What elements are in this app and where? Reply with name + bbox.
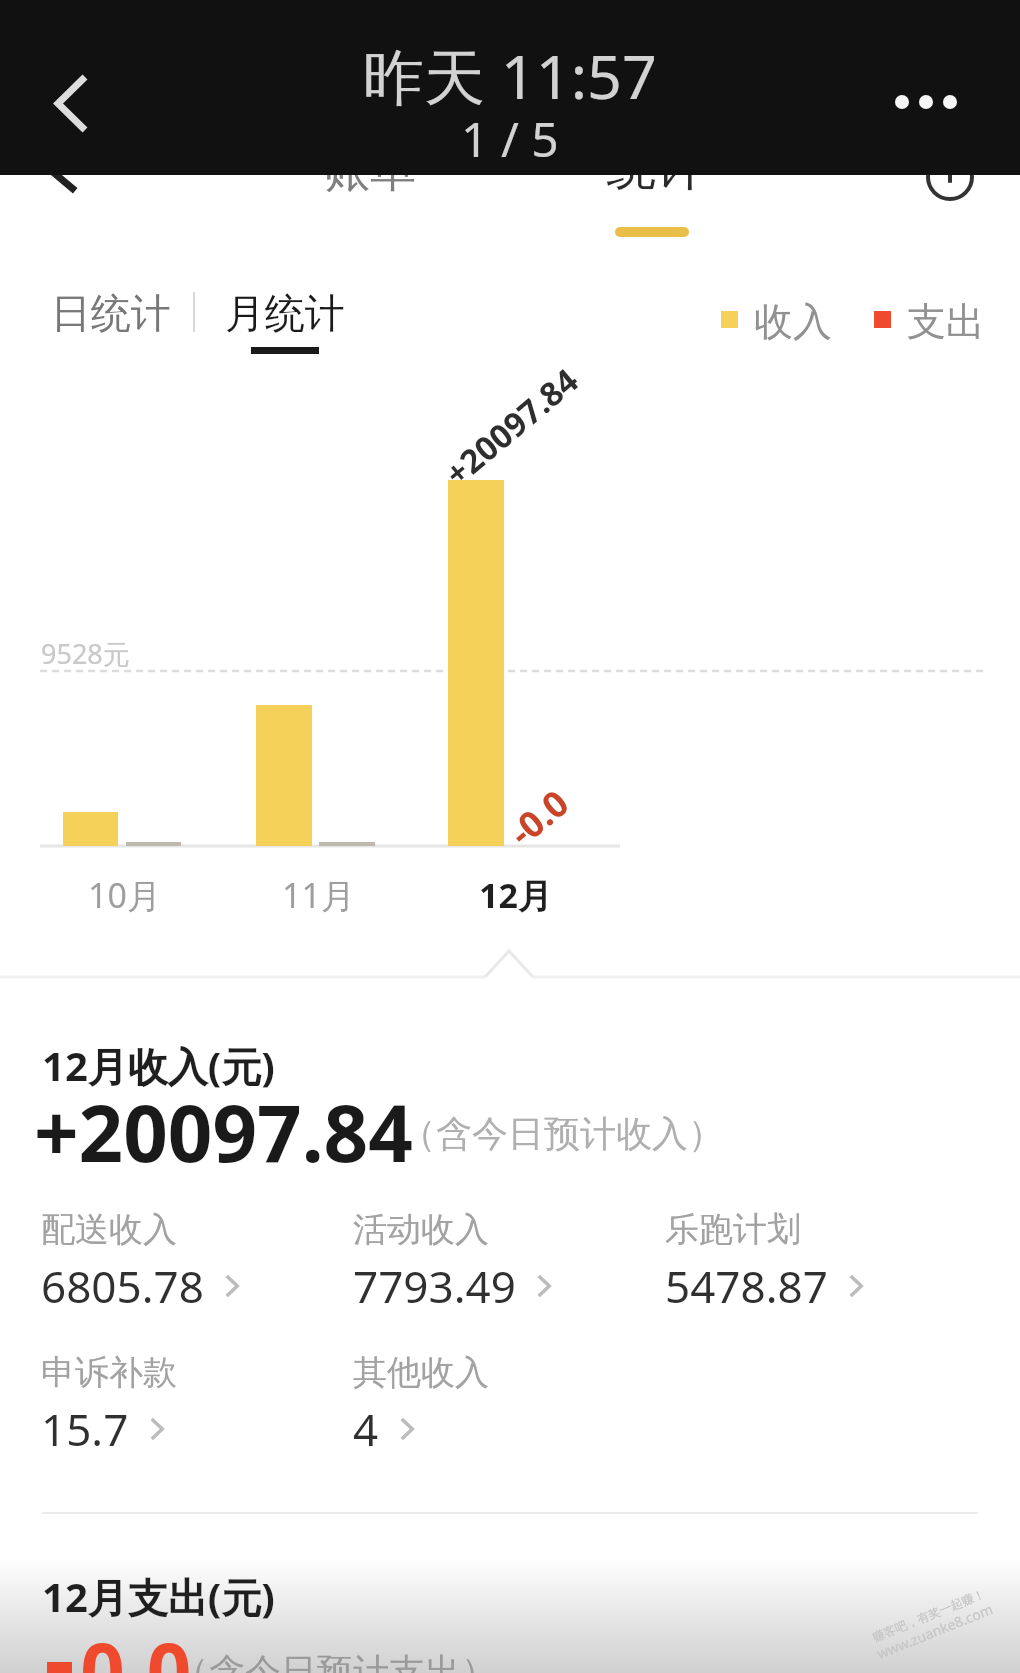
staticText: +20097.84	[34, 1079, 413, 1185]
button[interactable]: Back	[20, 130, 108, 218]
button[interactable]: Back	[31, 63, 111, 143]
staticText: 12月收入(元)	[42, 1038, 275, 1093]
staticText: 统计	[606, 136, 706, 199]
staticText: 5478.87	[665, 1256, 828, 1316]
staticText: 11月	[282, 872, 355, 918]
staticText: 10月	[88, 872, 161, 918]
staticText: +20097.84	[435, 357, 588, 495]
button[interactable]: 活动收入	[353, 1208, 653, 1323]
staticText: 月统计	[225, 288, 345, 338]
staticText: （含今日预计收入）	[400, 1111, 724, 1156]
staticText: 12月	[479, 872, 552, 918]
staticText: 7793.49	[353, 1256, 516, 1316]
button[interactable]: 申诉补款	[41, 1351, 341, 1466]
staticText: （含今日预计支出）	[173, 1649, 497, 1673]
button[interactable]: Help	[906, 133, 994, 221]
button[interactable]: 日统计	[51, 288, 171, 350]
staticText: 0.0	[60, 1617, 192, 1673]
button[interactable]: 月统计	[225, 288, 345, 366]
staticText: 支出	[907, 297, 985, 346]
staticText: 12月支出(元)	[42, 1569, 275, 1624]
staticText: 日统计	[51, 288, 171, 338]
staticText: 申诉补款	[41, 1351, 177, 1394]
staticText: 15.7	[41, 1399, 129, 1459]
button[interactable]: 乐跑计划	[665, 1208, 965, 1323]
button[interactable]: 统计	[606, 136, 706, 199]
staticText: -0.0	[499, 778, 578, 856]
staticText: 9528元	[41, 635, 130, 672]
staticText: 昨天 11:57	[363, 34, 657, 117]
staticText: www.zuanke8.com	[873, 1596, 995, 1660]
staticText: 4	[353, 1399, 379, 1459]
button[interactable]: 配送收入	[41, 1208, 341, 1323]
staticText: 1 / 5	[461, 106, 559, 171]
staticText: 6805.78	[41, 1256, 204, 1316]
staticText: 账单	[324, 142, 416, 200]
staticText: 赚客吧，有奖一起赚！	[870, 1583, 986, 1642]
staticText: 乐跑计划	[665, 1208, 801, 1251]
button[interactable]: 账单	[300, 130, 440, 200]
button[interactable]: 其他收入	[353, 1351, 653, 1466]
staticText: 收入	[754, 297, 832, 346]
staticText: 配送收入	[41, 1208, 177, 1251]
button[interactable]: More options	[876, 52, 976, 152]
staticText: 活动收入	[353, 1208, 489, 1251]
staticText: 其他收入	[353, 1351, 489, 1394]
